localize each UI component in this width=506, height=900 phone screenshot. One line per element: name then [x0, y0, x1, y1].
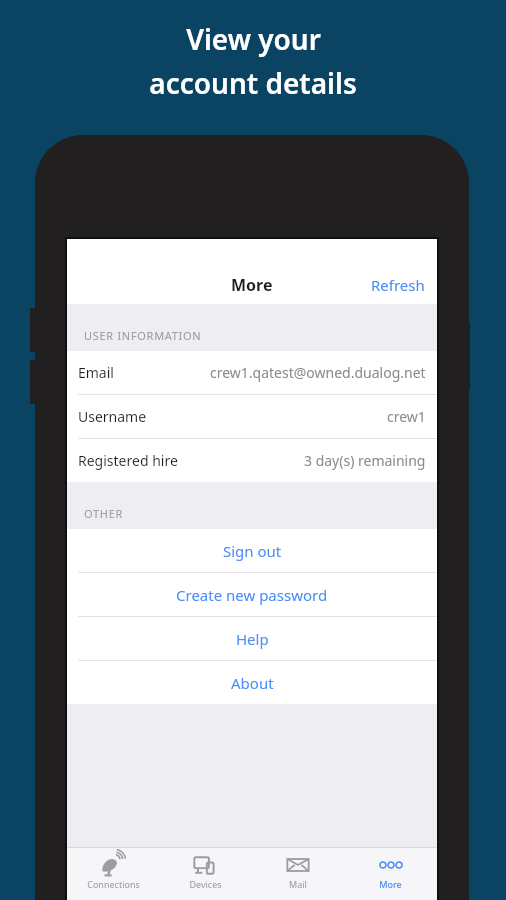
staticText: OTHER	[84, 506, 123, 521]
button[interactable]: Help	[67, 617, 437, 661]
button[interactable]: Connections	[67, 848, 159, 900]
button[interactable]: Devices	[159, 848, 251, 900]
staticText: 3 day(s) remaining	[304, 451, 426, 470]
staticText: Create new password	[176, 585, 328, 605]
staticText: More	[379, 878, 402, 890]
staticText: USER INFORMATION	[84, 328, 202, 343]
button[interactable]: Sign out	[67, 529, 437, 573]
staticText: Connections	[87, 878, 140, 890]
button[interactable]: Registered hire	[67, 439, 437, 482]
staticText: View your	[186, 20, 321, 58]
staticText: Mail	[289, 878, 307, 890]
staticText: Help	[236, 629, 269, 649]
button[interactable]: More	[344, 848, 437, 900]
staticText: Sign out	[223, 541, 282, 561]
button[interactable]: Refresh	[359, 267, 437, 303]
staticText: More	[231, 274, 273, 296]
button[interactable]: Create new password	[67, 573, 437, 617]
button[interactable]: About	[67, 661, 437, 704]
staticText: Username	[78, 407, 147, 426]
staticText: crew1	[387, 407, 426, 426]
staticText: Email	[78, 363, 114, 382]
staticText: About	[231, 673, 274, 693]
button[interactable]: Username	[67, 395, 437, 439]
staticText: crew1.qatest@owned.dualog.net	[210, 363, 426, 382]
staticText: Refresh	[371, 275, 425, 295]
staticText: Devices	[189, 878, 222, 890]
button[interactable]: Email	[67, 351, 437, 395]
button[interactable]: Mail	[251, 848, 344, 900]
staticText: account details	[149, 64, 357, 102]
staticText: Registered hire	[78, 451, 178, 470]
